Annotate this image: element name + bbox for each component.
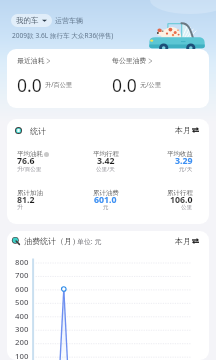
staticText: 我的车: [16, 16, 39, 25]
button[interactable]: 运营车辆: [55, 16, 83, 25]
button[interactable]: 我的车: [11, 14, 52, 27]
staticText: 元: [103, 204, 109, 211]
button[interactable]: 累计行程: [134, 189, 193, 211]
staticText: 81.2: [17, 194, 35, 206]
button[interactable]: 平均行程: [76, 150, 135, 172]
staticText: 元/天: [179, 165, 193, 173]
staticText: 76.6: [17, 155, 35, 167]
staticText: 0.0: [112, 73, 137, 97]
button[interactable]: 本月: [175, 125, 199, 135]
staticText: 升/百公里: [17, 165, 42, 173]
staticText: 700: [15, 270, 29, 281]
staticText: 600: [15, 284, 29, 295]
other: 切换统计周期: [192, 238, 199, 244]
button[interactable]: 累计加油: [17, 189, 76, 211]
staticText: 升: [17, 204, 23, 211]
button[interactable]: 累计油费: [76, 189, 135, 211]
staticText: 平均收益: [167, 150, 193, 158]
staticText: 200: [15, 337, 29, 348]
staticText: 统计: [30, 126, 46, 136]
staticText: 106.0: [170, 194, 193, 206]
staticText: 本月: [175, 236, 191, 246]
staticText: 300: [15, 324, 29, 335]
staticText: 本月: [175, 125, 191, 135]
staticText: 累计油费: [93, 189, 119, 197]
button[interactable]: 本月: [175, 236, 199, 246]
staticText: 800: [15, 257, 29, 268]
staticText: 平均行程: [93, 150, 119, 158]
staticText: 100: [15, 351, 29, 360]
staticText: 升/百公里: [45, 80, 73, 88]
staticText: 2009款 3.6L 旅行车 大众R36(停售): [12, 31, 114, 40]
staticText: 最近油耗: [17, 56, 45, 65]
staticText: 400: [15, 311, 29, 322]
button[interactable]: 平均收益: [134, 150, 193, 172]
button[interactable]: 最近油耗: [7, 49, 95, 108]
staticText: 油费统计（月）: [24, 236, 80, 246]
staticText: 公里/天: [96, 165, 115, 173]
staticText: 元/公里: [140, 80, 161, 88]
staticText: 3.42: [97, 155, 115, 167]
staticText: 平均油耗: [17, 150, 43, 158]
staticText: 601.0: [94, 194, 117, 206]
button[interactable]: 每公里油费: [102, 49, 202, 108]
staticText: 500: [15, 297, 29, 308]
staticText: 0.0: [17, 73, 42, 97]
staticText: 3.29: [175, 155, 193, 167]
staticText: 累计行程: [167, 189, 193, 197]
other: 切换统计周期: [192, 127, 199, 133]
staticText: 公里: [181, 204, 193, 211]
staticText: 每公里油费: [112, 56, 147, 65]
staticText: 累计加油: [17, 189, 43, 197]
button[interactable]: 平均油耗: [17, 150, 76, 172]
staticText: 单位: 元: [77, 237, 102, 246]
